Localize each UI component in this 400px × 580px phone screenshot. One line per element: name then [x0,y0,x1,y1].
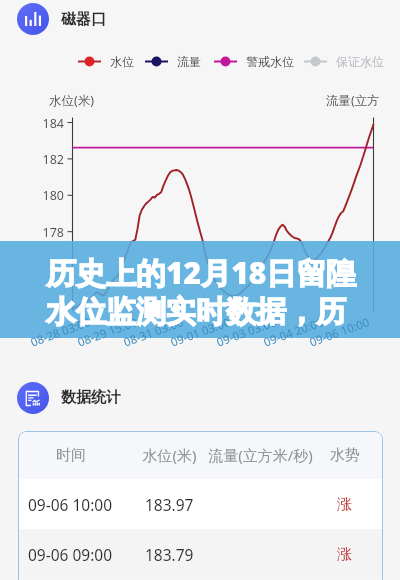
staticText: 历史上的12月18日留隍 [46,252,357,293]
button[interactable]: 流量 [145,54,201,68]
staticText: 183.79 [145,544,194,565]
staticText: 180 [38,187,64,204]
button[interactable]: 09-06 10:00 [18,479,383,529]
staticText: 流量 [177,54,201,68]
staticText: 警戒水位 [246,54,294,68]
button[interactable]: 警戒水位 [214,54,294,68]
staticText: 08-28 03:00 [28,314,93,350]
staticText: 流量(立方米/秒) [208,445,313,465]
staticText: 182 [38,151,64,168]
staticText: 数据统计 [61,388,121,407]
staticText: 183.97 [145,494,194,515]
staticText: 水势 [330,446,360,465]
staticText: 磁器口 [61,10,106,29]
staticText: 流量(立方 [326,92,380,109]
staticText: 09-03 03:00 [214,314,279,350]
button[interactable]: 数据统计 [0,381,400,414]
staticText: 09-04 20:00 [261,314,326,350]
staticText: 178 [38,224,64,241]
staticText: 08-31 03:00 [121,314,186,350]
staticText: 水位(米) [142,445,197,465]
staticText: 时间 [56,446,86,465]
staticText: 09-06 10:00 [28,494,113,515]
staticText: 水位 [110,54,134,68]
staticText: 09-06 09:00 [28,544,113,565]
staticText: 08-29 15:00 [75,314,140,350]
staticText: 涨 [337,495,352,514]
staticText: 涨 [337,545,352,564]
staticText: 09-01 03:00 [168,314,233,350]
staticText: 水位(米) [49,92,95,109]
staticText: 保证水位 [336,54,384,68]
button[interactable]: 磁器口 [0,0,400,38]
staticText: 09-06 10:00 [307,314,372,350]
button[interactable]: 保证水位 [304,54,384,68]
button[interactable]: 09-06 09:00 [18,529,383,579]
staticText: 184 [38,115,64,132]
staticText: 水位监测实时数据，历 [46,293,346,331]
button[interactable]: 水位 [78,54,134,68]
